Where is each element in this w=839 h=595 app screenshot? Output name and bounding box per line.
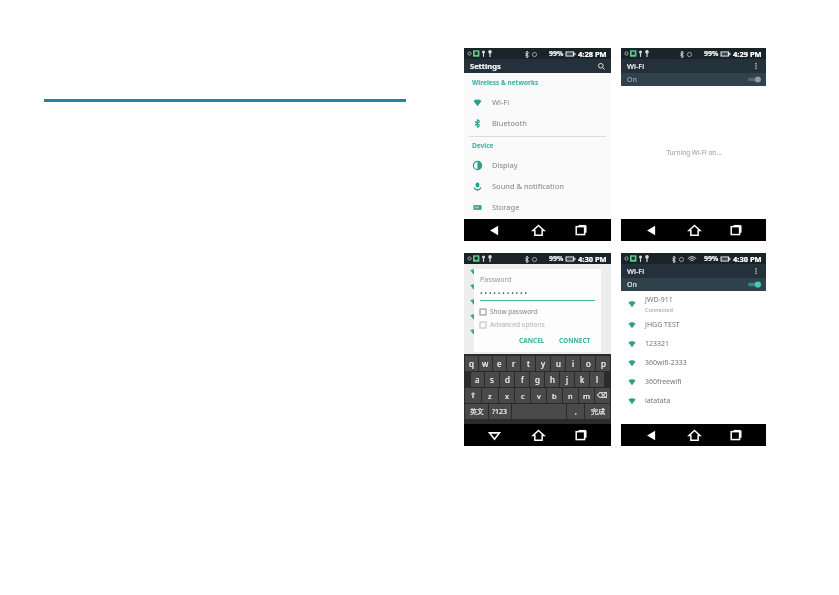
button[interactable]: Recent apps xyxy=(723,219,749,241)
staticText: x xyxy=(505,391,509,401)
button[interactable]: p xyxy=(596,356,610,371)
button[interactable]: Hide keyboard xyxy=(481,424,507,446)
staticText: 123321 xyxy=(645,339,670,349)
staticText: Connected xyxy=(645,306,673,313)
staticText: g xyxy=(535,374,540,385)
button[interactable]: iatatata xyxy=(621,391,766,410)
button[interactable]: JWD-911 xyxy=(621,293,766,315)
staticText: ?123 xyxy=(492,407,508,417)
staticText: c xyxy=(521,391,525,401)
button[interactable]: a xyxy=(471,372,484,387)
button[interactable]: ⌫ xyxy=(595,388,610,403)
button[interactable]: i xyxy=(566,356,580,371)
button[interactable]: Back xyxy=(638,219,664,241)
button[interactable]: Recent apps xyxy=(568,424,594,446)
button[interactable]: v xyxy=(531,388,546,403)
button[interactable]: Home xyxy=(681,424,707,446)
button[interactable]: Sound & notification xyxy=(464,175,611,196)
button[interactable]: Display xyxy=(464,154,611,175)
button[interactable]: Show password xyxy=(480,307,538,316)
staticText: Show password xyxy=(490,307,538,316)
button[interactable]: c xyxy=(515,388,530,403)
button[interactable]: Advanced options xyxy=(480,320,545,329)
button[interactable]: Bluetooth xyxy=(464,112,611,133)
button[interactable]: y xyxy=(536,356,550,371)
button[interactable]: o xyxy=(581,356,595,371)
button[interactable]: d xyxy=(500,372,514,387)
button[interactable]: On xyxy=(621,278,766,291)
button[interactable]: Home xyxy=(525,424,551,446)
button[interactable]: f xyxy=(515,372,529,387)
staticText: h xyxy=(550,374,555,385)
staticText: Settings xyxy=(470,61,501,71)
button[interactable]: 360freewifi xyxy=(621,372,766,391)
staticText: m xyxy=(583,391,591,401)
staticText: p xyxy=(601,358,606,369)
staticText: • • • • • • • • • • • xyxy=(480,289,528,299)
staticText: CANCEL xyxy=(519,336,545,345)
staticText: k xyxy=(580,374,585,385)
button[interactable]: 完成 xyxy=(585,404,610,419)
button[interactable]: Wi-Fi xyxy=(621,264,766,278)
button[interactable]: Home xyxy=(525,219,551,241)
staticText: 99% xyxy=(549,254,564,264)
button[interactable]: s xyxy=(485,372,499,387)
button[interactable]: Recent apps xyxy=(568,219,594,241)
staticText: d xyxy=(505,374,510,385)
button[interactable]: ?123 xyxy=(489,404,511,419)
button[interactable]: ⇧ xyxy=(465,388,481,403)
button[interactable]: Back xyxy=(638,424,664,446)
staticText: iatatata xyxy=(645,396,671,406)
button[interactable]: r xyxy=(507,356,520,371)
button[interactable]: Back xyxy=(481,219,507,241)
button[interactable]: g xyxy=(530,372,544,387)
staticText: Bluetooth xyxy=(492,118,527,128)
staticText: f xyxy=(521,374,524,385)
button[interactable]: Settings xyxy=(464,59,611,73)
button[interactable]: l xyxy=(590,372,604,387)
staticText: JWD-911 xyxy=(645,295,673,305)
button[interactable]: h xyxy=(545,372,559,387)
button[interactable]: t xyxy=(521,356,535,371)
button[interactable]: u xyxy=(551,356,565,371)
button[interactable]: JHGG TEST xyxy=(621,315,766,334)
button[interactable]: Wi-Fi xyxy=(621,59,766,73)
staticText: 4:30 PM xyxy=(733,254,762,264)
button[interactable]: , xyxy=(567,404,584,419)
button[interactable]: On xyxy=(621,73,766,86)
button[interactable]: Home xyxy=(681,219,707,241)
staticText: Display xyxy=(492,160,518,170)
staticText: y xyxy=(541,358,546,369)
button[interactable]: x xyxy=(499,388,514,403)
button[interactable]: n xyxy=(563,388,578,403)
button[interactable]: q xyxy=(465,356,478,371)
staticText: n xyxy=(568,391,573,401)
button[interactable]: CONNECT xyxy=(555,335,595,346)
staticText: , xyxy=(575,407,577,417)
button[interactable]: z xyxy=(482,388,498,403)
button[interactable]: j xyxy=(560,372,574,387)
staticText: On xyxy=(627,75,637,85)
button[interactable]: Search xyxy=(595,60,607,72)
staticText: 4:28 PM xyxy=(578,49,607,59)
button[interactable]: 123321 xyxy=(621,334,766,353)
staticText: q xyxy=(469,358,474,369)
button[interactable]: b xyxy=(547,388,562,403)
button[interactable]: m xyxy=(579,388,594,403)
button[interactable]: CANCEL xyxy=(515,335,549,346)
staticText: u xyxy=(556,358,561,369)
button[interactable]: 英文 xyxy=(465,404,488,419)
button[interactable]: More options xyxy=(750,265,762,277)
button[interactable]: 360wifi-2333 xyxy=(621,353,766,372)
staticText: Turning Wi-Fi on… xyxy=(666,148,722,157)
button[interactable]: More options xyxy=(750,60,762,72)
button[interactable]: Wi-Fi xyxy=(464,91,611,112)
staticText: t xyxy=(527,358,530,369)
button[interactable]: Recent apps xyxy=(723,424,749,446)
button[interactable]: Storage xyxy=(464,196,611,217)
button[interactable]: e xyxy=(493,356,506,371)
button[interactable]: k xyxy=(575,372,589,387)
button[interactable]: w xyxy=(479,356,492,371)
